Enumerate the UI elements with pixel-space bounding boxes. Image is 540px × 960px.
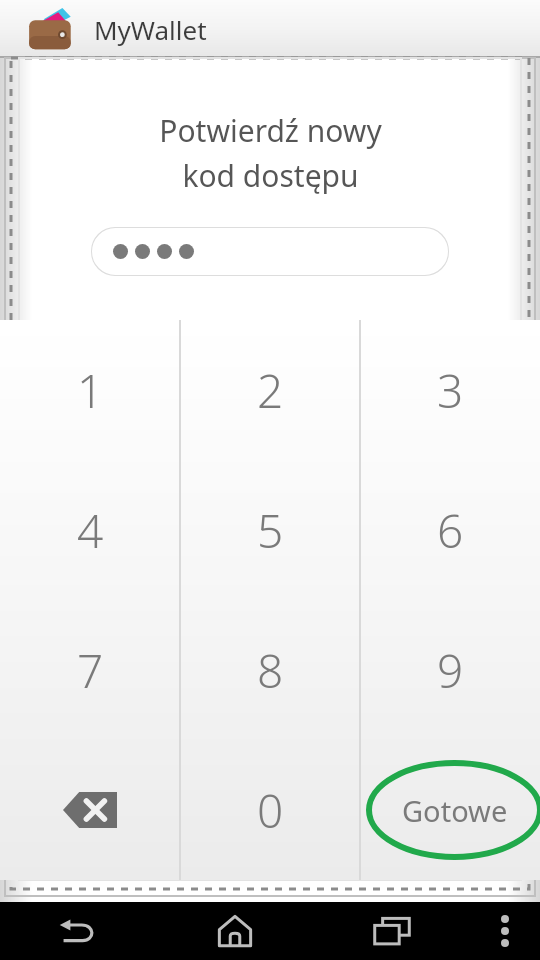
button[interactable]: Gotowe [360, 740, 540, 880]
button[interactable]: Home [156, 902, 313, 960]
staticText: 4 [77, 499, 104, 562]
button[interactable]: 2 [180, 320, 360, 460]
staticText: Gotowe [402, 791, 508, 830]
staticText: 8 [257, 639, 284, 702]
staticText: Potwierdź nowy kod dostępu [159, 110, 382, 195]
button[interactable]: 0 [180, 740, 360, 880]
staticText: 2 [257, 359, 284, 422]
staticText: 7 [77, 639, 104, 702]
staticText: 0 [257, 779, 284, 842]
button[interactable]: 1 [0, 320, 180, 460]
button[interactable] [91, 227, 449, 276]
button[interactable]: Backspace [0, 740, 180, 880]
staticText: 6 [437, 499, 464, 562]
button[interactable]: 5 [180, 460, 360, 600]
staticText: 5 [257, 499, 284, 562]
button[interactable]: 4 [0, 460, 180, 600]
button[interactable]: Back [0, 902, 156, 960]
staticText: 3 [437, 359, 464, 422]
button[interactable]: 6 [360, 460, 540, 600]
button[interactable]: More options [470, 902, 540, 960]
button[interactable]: 8 [180, 600, 360, 740]
button[interactable]: 9 [360, 600, 540, 740]
button[interactable]: Recents [313, 902, 470, 960]
button[interactable]: 7 [0, 600, 180, 740]
staticText: 1 [77, 359, 104, 422]
staticText: MyWallet [94, 12, 207, 47]
staticText: 9 [437, 639, 464, 702]
button[interactable]: 3 [360, 320, 540, 460]
